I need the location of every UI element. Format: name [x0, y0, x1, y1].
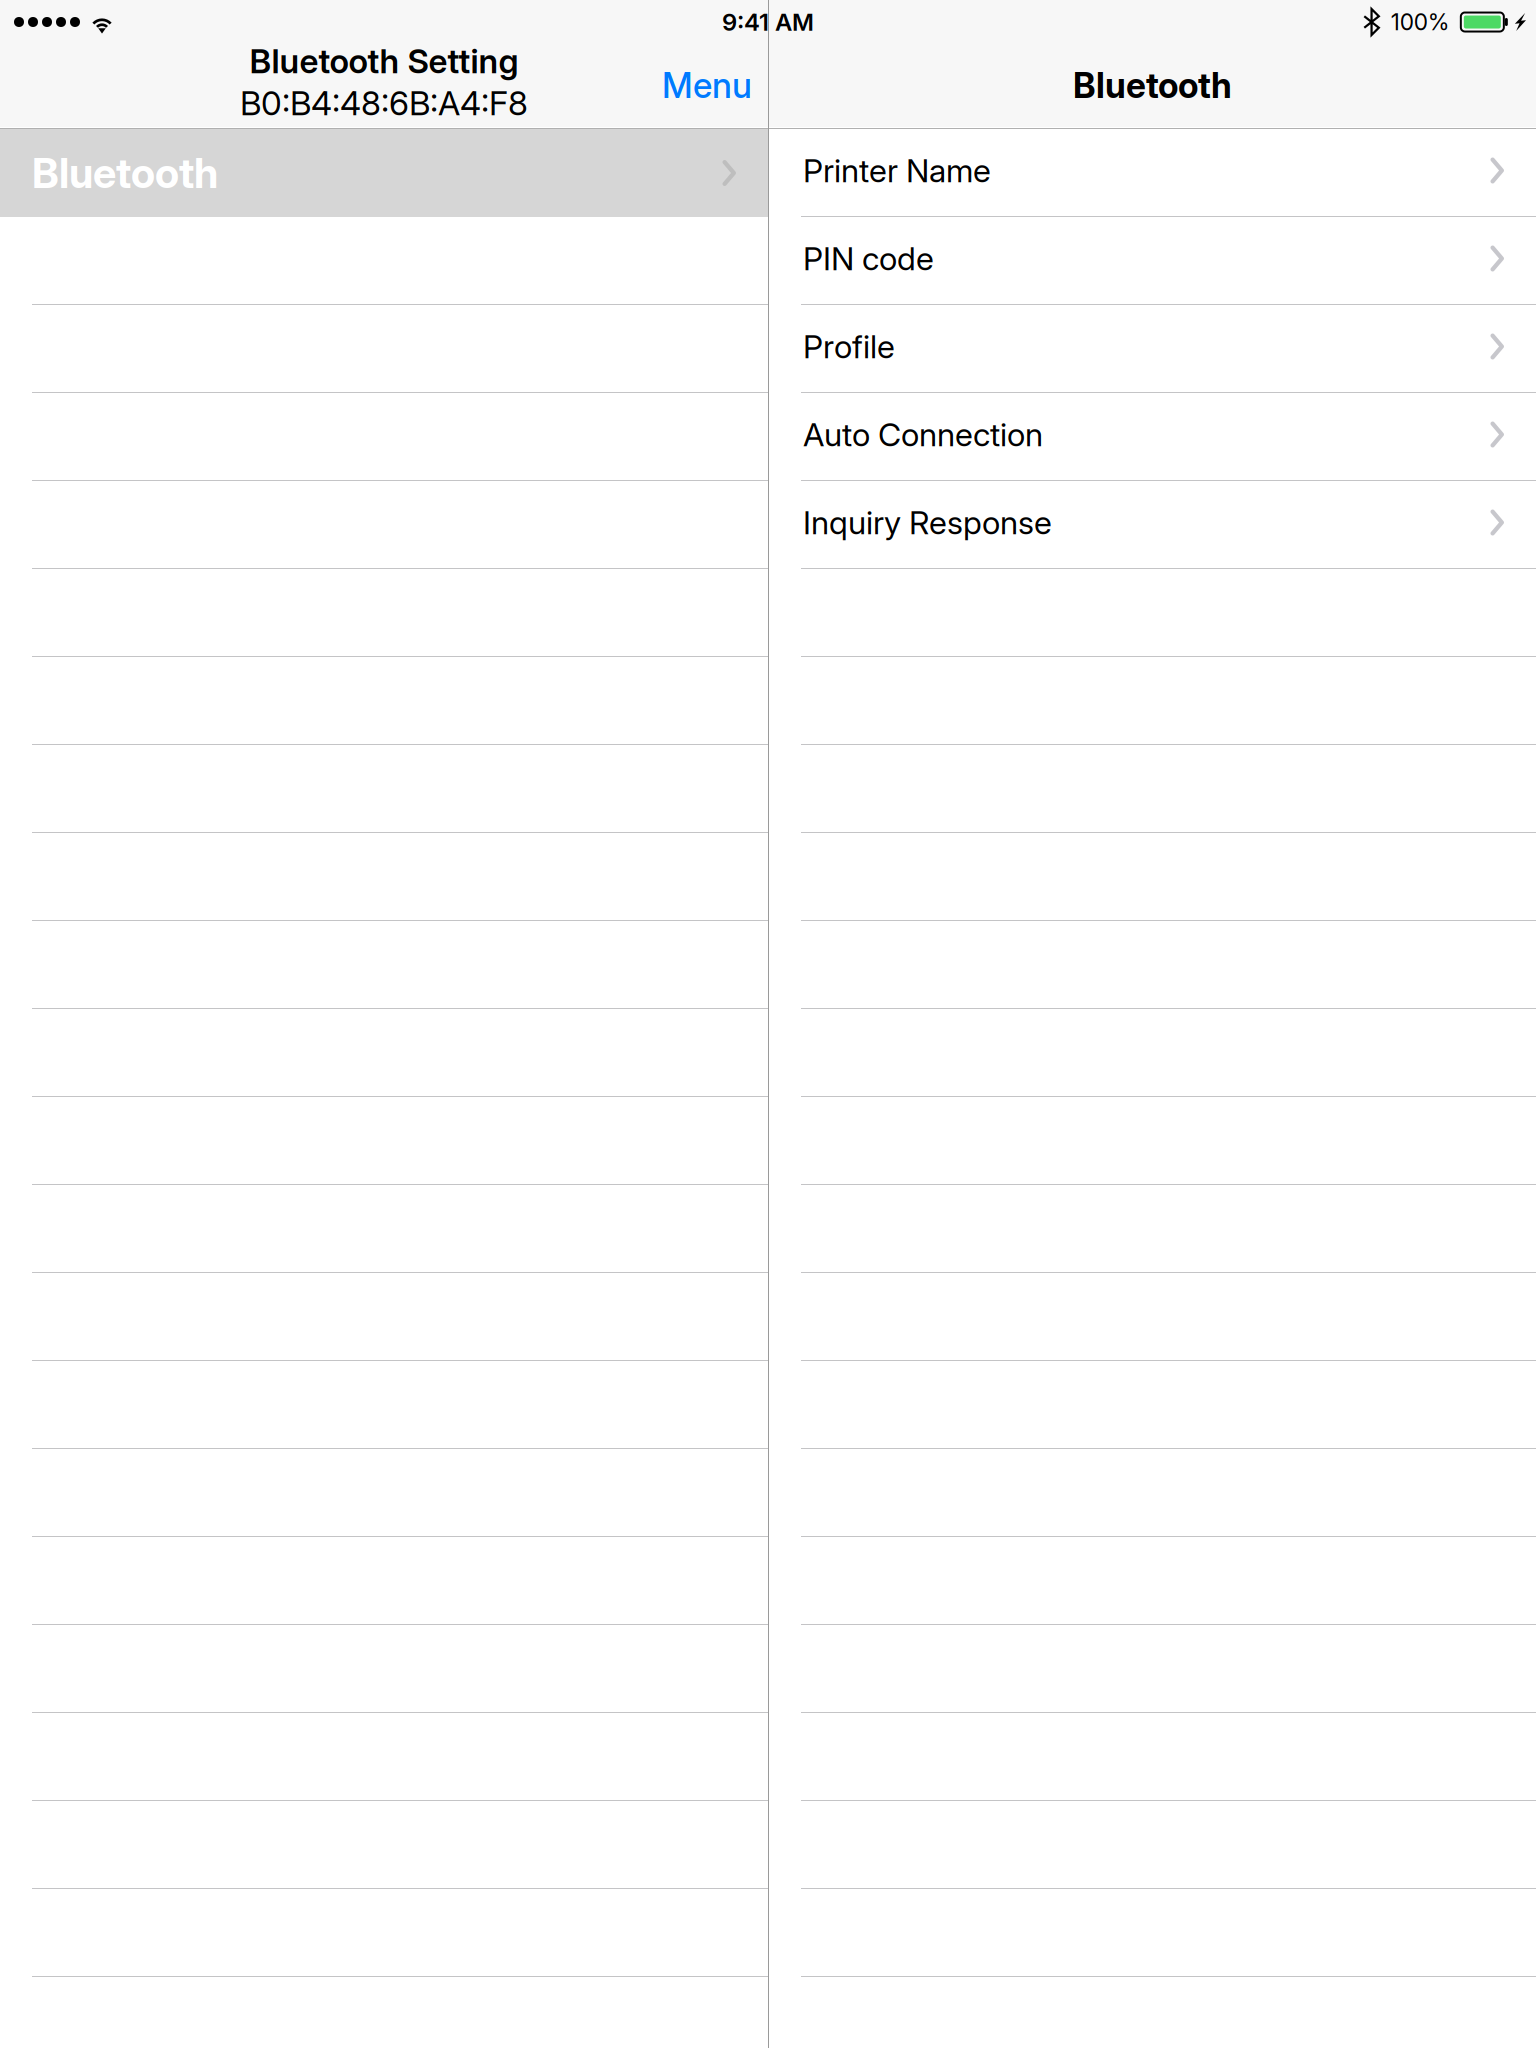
- staticText: 100%: [1391, 8, 1450, 36]
- staticText: Auto Connection: [803, 415, 1043, 454]
- staticText: Inquiry Response: [803, 503, 1052, 542]
- staticText: Bluetooth: [1073, 64, 1232, 106]
- button[interactable]: Bluetooth: [0, 129, 768, 217]
- button[interactable]: Profile: [769, 305, 1536, 393]
- staticText: Bluetooth Setting: [249, 41, 518, 81]
- button[interactable]: PIN code: [769, 217, 1536, 305]
- button[interactable]: Inquiry Response: [769, 481, 1536, 569]
- staticText: 9:41 AM: [722, 7, 814, 36]
- button[interactable]: Menu: [640, 44, 768, 126]
- staticText: Profile: [803, 327, 895, 366]
- staticText: B0:B4:48:6B:A4:F8: [240, 83, 528, 123]
- staticText: Menu: [662, 64, 752, 106]
- button[interactable]: Auto Connection: [769, 393, 1536, 481]
- staticText: Printer Name: [803, 151, 991, 190]
- button[interactable]: Printer Name: [769, 129, 1536, 217]
- staticText: PIN code: [803, 239, 934, 278]
- staticText: Bluetooth: [32, 148, 218, 198]
